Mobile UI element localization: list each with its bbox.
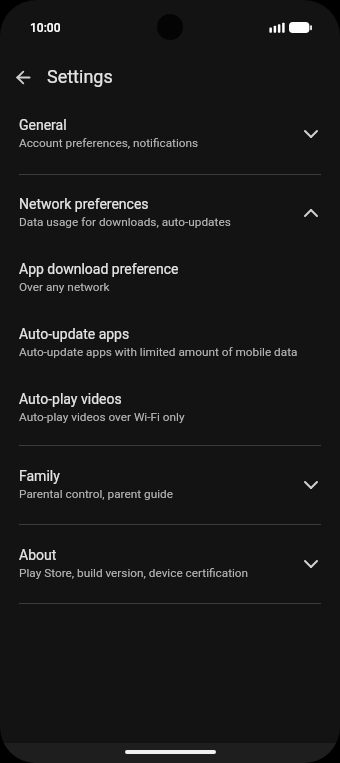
button[interactable]: Network preferences: [0, 175, 340, 245]
staticText: Auto-play videos over Wi-Fi only: [19, 410, 185, 424]
staticText: Auto-update apps: [19, 326, 130, 342]
button[interactable]: General: [0, 102, 340, 174]
button[interactable]: Expand: [296, 549, 326, 579]
staticText: Settings: [47, 66, 113, 87]
staticText: 10:00: [30, 21, 61, 35]
button[interactable]: App download preference: [0, 245, 340, 310]
staticText: Data usage for downloads, auto-updates: [19, 215, 231, 229]
staticText: App download preference: [19, 261, 179, 277]
staticText: About: [19, 547, 57, 563]
staticText: Account preferences, notifications: [19, 136, 199, 150]
staticText: Play Store, build version, device certif…: [19, 566, 249, 580]
staticText: Family: [19, 468, 60, 484]
button[interactable]: Back: [9, 63, 38, 92]
staticText: Network preferences: [19, 196, 149, 212]
staticText: Auto-update apps with limited amount of …: [19, 345, 298, 359]
button[interactable]: Family: [0, 446, 340, 524]
button[interactable]: Auto-play videos: [0, 375, 340, 445]
button[interactable]: Expand: [296, 470, 326, 500]
staticText: Over any network: [19, 280, 110, 294]
button[interactable]: Auto-update apps: [0, 310, 340, 375]
button[interactable]: About: [0, 525, 340, 603]
staticText: Parental control, parent guide: [19, 487, 173, 501]
button[interactable]: Collapse: [296, 198, 326, 228]
staticText: Auto-play videos: [19, 391, 122, 407]
button[interactable]: Expand: [296, 119, 326, 149]
staticText: General: [19, 117, 67, 133]
